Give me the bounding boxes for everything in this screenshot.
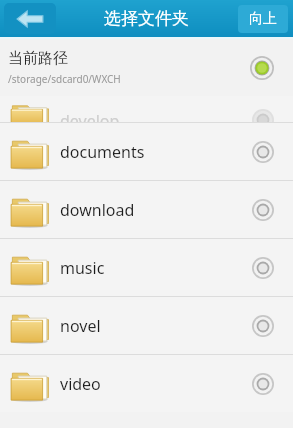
staticText: documents bbox=[60, 141, 145, 163]
staticText: /storage/sdcard0/WXCH bbox=[8, 72, 121, 86]
staticText: 当前路径 bbox=[8, 49, 68, 68]
staticText: novel bbox=[60, 315, 101, 337]
staticText: download bbox=[60, 199, 135, 221]
staticText: develop bbox=[60, 110, 120, 132]
button[interactable]: video bbox=[0, 355, 293, 412]
button[interactable]: develop bbox=[0, 96, 293, 122]
button[interactable]: 当前路径 bbox=[0, 39, 293, 96]
button[interactable]: download bbox=[0, 181, 293, 238]
button[interactable]: Back bbox=[4, 3, 56, 34]
button[interactable]: 向上 bbox=[238, 5, 288, 33]
button[interactable]: documents bbox=[0, 123, 293, 180]
staticText: 向上 bbox=[249, 10, 277, 28]
staticText: 选择文件夹 bbox=[104, 8, 189, 29]
staticText: video bbox=[60, 373, 101, 395]
button[interactable]: novel bbox=[0, 297, 293, 354]
staticText: music bbox=[60, 257, 105, 279]
button[interactable]: music bbox=[0, 239, 293, 296]
